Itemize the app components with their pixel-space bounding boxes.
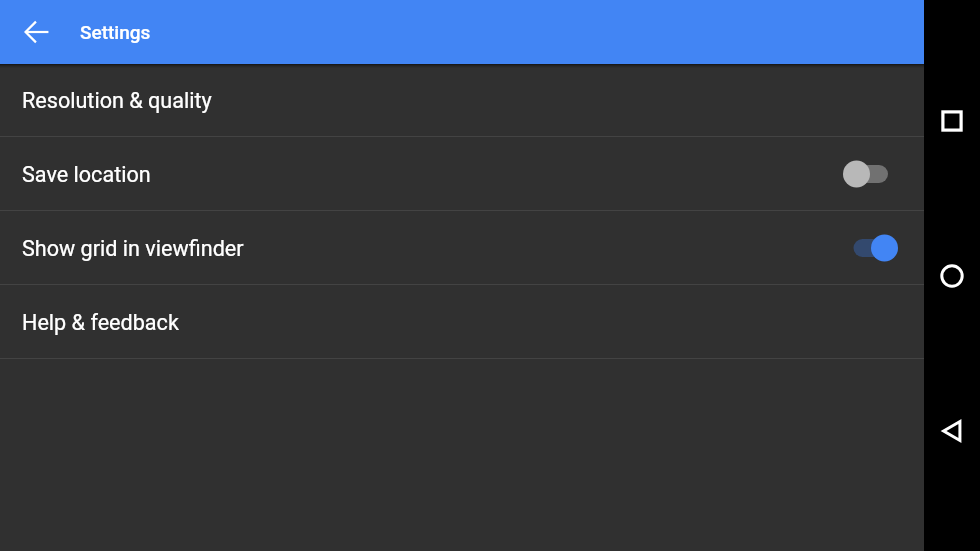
button[interactable]: Navigate up (13, 8, 61, 56)
button[interactable]: Back (924, 403, 980, 459)
button[interactable]: Resolution & quality (0, 64, 924, 137)
staticText: Help & feedback (22, 310, 179, 335)
staticText: Save location (22, 162, 151, 187)
staticText: Show grid in viewfinder (22, 236, 244, 261)
button[interactable]: Home (924, 248, 980, 304)
button[interactable]: Show grid in viewfinder (0, 211, 924, 285)
button[interactable]: Help & feedback (0, 285, 924, 359)
button[interactable]: Recent apps (924, 93, 980, 149)
staticText: Settings (80, 21, 151, 43)
button[interactable]: Save location (0, 137, 924, 211)
staticText: Resolution & quality (22, 88, 212, 113)
